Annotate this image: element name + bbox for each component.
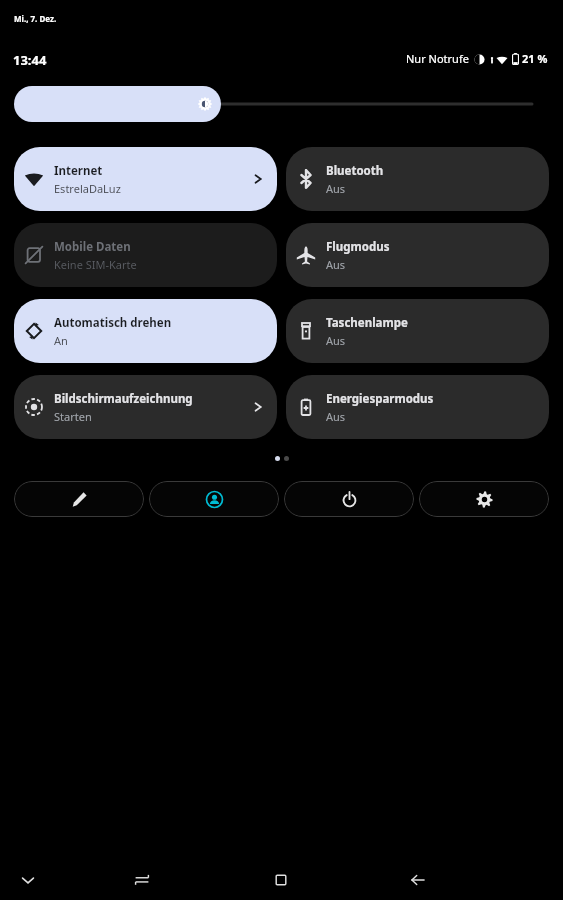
staticText: 21 % — [522, 51, 548, 66]
staticText: Keine SIM-Karte — [54, 257, 137, 272]
button[interactable]: Schließen — [6, 858, 50, 900]
staticText: Flugmodus — [326, 239, 390, 255]
staticText: Nur Notrufe — [406, 51, 469, 66]
staticText: Bildschirmaufzeichnung — [54, 391, 193, 407]
button[interactable]: Startbildschirm — [259, 858, 303, 900]
staticText: 13:44 — [13, 51, 47, 69]
staticText: Mi., 7. Dez. — [14, 13, 57, 24]
staticText: Bluetooth — [326, 163, 384, 179]
button[interactable]: Mobile Daten — [14, 223, 277, 287]
button[interactable]: Bluetooth — [286, 147, 549, 211]
staticText: An — [54, 333, 68, 348]
staticText: Internet — [54, 163, 103, 179]
button[interactable]: Flugmodus — [286, 223, 549, 287]
staticText: Aus — [326, 257, 346, 272]
button[interactable]: Nutzer — [149, 481, 279, 517]
button[interactable]: Energiesparmodus — [286, 375, 549, 439]
button[interactable]: Internet — [14, 147, 277, 211]
button[interactable]: Wechseln — [120, 858, 164, 900]
button[interactable]: Bearbeiten — [14, 481, 144, 517]
staticText: Starten — [54, 409, 92, 424]
staticText: Aus — [326, 409, 346, 424]
staticText: Mobile Daten — [54, 239, 131, 255]
staticText: EstrelaDaLuz — [54, 181, 121, 196]
button[interactable]: Zurück — [396, 858, 440, 900]
button[interactable]: Helligkeit — [14, 86, 532, 122]
button[interactable]: Automatisch drehen — [14, 299, 277, 363]
staticText: Energiesparmodus — [326, 391, 434, 407]
button[interactable]: Ein/Aus — [284, 481, 414, 517]
staticText: Taschenlampe — [326, 315, 408, 331]
staticText: Aus — [326, 181, 346, 196]
staticText: Aus — [326, 333, 346, 348]
button[interactable]: Einstellungen — [419, 481, 549, 517]
button[interactable]: Taschenlampe — [286, 299, 549, 363]
button[interactable]: Bildschirmaufzeichnung — [14, 375, 277, 439]
staticText: Automatisch drehen — [54, 315, 172, 331]
